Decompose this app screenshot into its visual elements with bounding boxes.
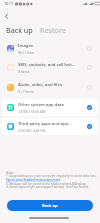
staticText: 80 / 1 item	[18, 50, 35, 54]
button[interactable]: Back	[0, 10, 12, 22]
staticText: Note:	[6, 171, 14, 175]
staticText: Audio, video, and files	[18, 82, 62, 88]
staticText: Restore	[40, 25, 66, 35]
button[interactable]: Images	[2, 40, 98, 57]
staticText: 0 / 7 items	[18, 89, 35, 93]
staticText: Back up	[6, 25, 33, 35]
staticText: 3.8 KB / 18.56 MB	[18, 109, 46, 113]
button[interactable]: Back up	[7, 200, 93, 211]
button[interactable]: SMS, contacts, and call hist...	[2, 59, 98, 76]
button[interactable]: Audio, video, and files	[2, 79, 98, 96]
staticText: SMS, contacts, and call hist...	[18, 62, 76, 68]
button[interactable]: Back up	[6, 25, 33, 35]
button[interactable]: Third party apps and app...	[2, 118, 98, 135]
staticText: 3. Some apps might not support backup. D…	[6, 185, 90, 189]
staticText: Other system app data	[18, 102, 64, 108]
staticText: 2. Backups will be saved to the folder n…	[6, 182, 87, 186]
button[interactable]: Other system app data	[2, 99, 98, 116]
staticText: Tap to view detailed instructions here	[6, 178, 61, 182]
staticText: 4.03 GB / 4.84 GB	[18, 128, 45, 132]
staticText: 1. Copy backups to your computer regular…	[6, 174, 97, 178]
staticText: Third party apps and app...	[18, 121, 72, 127]
button[interactable]: Restore	[40, 25, 66, 35]
staticText: Back up	[42, 203, 58, 209]
staticText: 0 items	[18, 69, 30, 73]
staticText: Images	[18, 43, 33, 49]
button[interactable]: Tap to view detailed instructions here	[6, 178, 61, 182]
staticText: 10:11	[4, 1, 14, 6]
